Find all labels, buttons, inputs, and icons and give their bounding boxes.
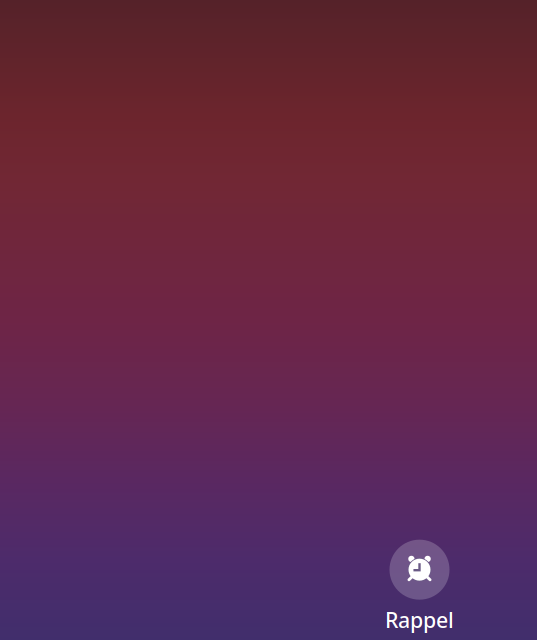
staticText: Rappel [385,606,454,634]
button[interactable]: Rappel [385,540,454,634]
